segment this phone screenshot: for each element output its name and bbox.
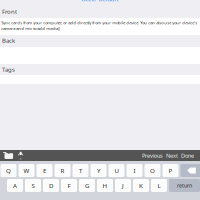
button[interactable]: Previous — [142, 152, 163, 159]
staticText: Back — [2, 36, 15, 44]
staticText: D — [49, 181, 53, 190]
button[interactable]: U — [108, 164, 124, 177]
button[interactable]: S — [25, 179, 41, 192]
staticText: J — [122, 181, 124, 190]
staticText: L — [157, 181, 160, 190]
staticText: Tags — [2, 65, 15, 73]
staticText: Next — [166, 152, 178, 159]
staticText: Sync cards from your computer, or add di… — [1, 20, 197, 31]
button[interactable]: G — [79, 179, 95, 192]
staticText: Previous — [142, 152, 163, 159]
staticText: return — [177, 182, 192, 189]
staticText: T — [79, 166, 82, 175]
staticText: Done — [181, 152, 194, 159]
button[interactable]: Next — [163, 152, 178, 159]
staticText: I — [133, 166, 135, 175]
button[interactable]: Done — [178, 152, 200, 159]
button[interactable]: Q — [0, 164, 16, 177]
button[interactable]: W — [18, 164, 34, 177]
button[interactable]: E — [36, 164, 52, 177]
button[interactable]: A — [7, 179, 23, 192]
staticText: H — [102, 181, 107, 190]
staticText: W — [23, 166, 29, 175]
button[interactable]: H — [97, 179, 113, 192]
staticText: Deck: Default — [81, 0, 118, 3]
staticText: A — [13, 181, 17, 190]
button[interactable]: L — [151, 179, 167, 192]
staticText: O — [150, 166, 155, 175]
staticText: R — [60, 166, 64, 175]
staticText: G — [85, 181, 89, 190]
button[interactable]: O — [144, 164, 160, 177]
staticText: F — [67, 181, 70, 190]
button[interactable]: R — [54, 164, 70, 177]
staticText: K — [139, 181, 143, 190]
button[interactable]: P — [162, 164, 178, 177]
staticText: S — [31, 181, 34, 190]
button[interactable]: Microphone — [16, 151, 25, 159]
staticText: P — [168, 166, 172, 175]
button[interactable]: Y — [90, 164, 106, 177]
button[interactable]: J — [115, 179, 131, 192]
button[interactable]: T — [72, 164, 88, 177]
button[interactable]: I — [126, 164, 142, 177]
button[interactable]: Delete — [180, 164, 200, 177]
button[interactable]: D — [43, 179, 59, 192]
staticText: Front — [2, 7, 17, 15]
staticText: E — [43, 166, 46, 175]
button[interactable]: Camera — [0, 152, 16, 159]
staticText: Q — [6, 166, 11, 175]
button[interactable]: return — [169, 179, 200, 192]
button[interactable]: F — [61, 179, 77, 192]
staticText: Y — [97, 166, 100, 175]
staticText: U — [114, 166, 118, 175]
button[interactable]: K — [133, 179, 149, 192]
